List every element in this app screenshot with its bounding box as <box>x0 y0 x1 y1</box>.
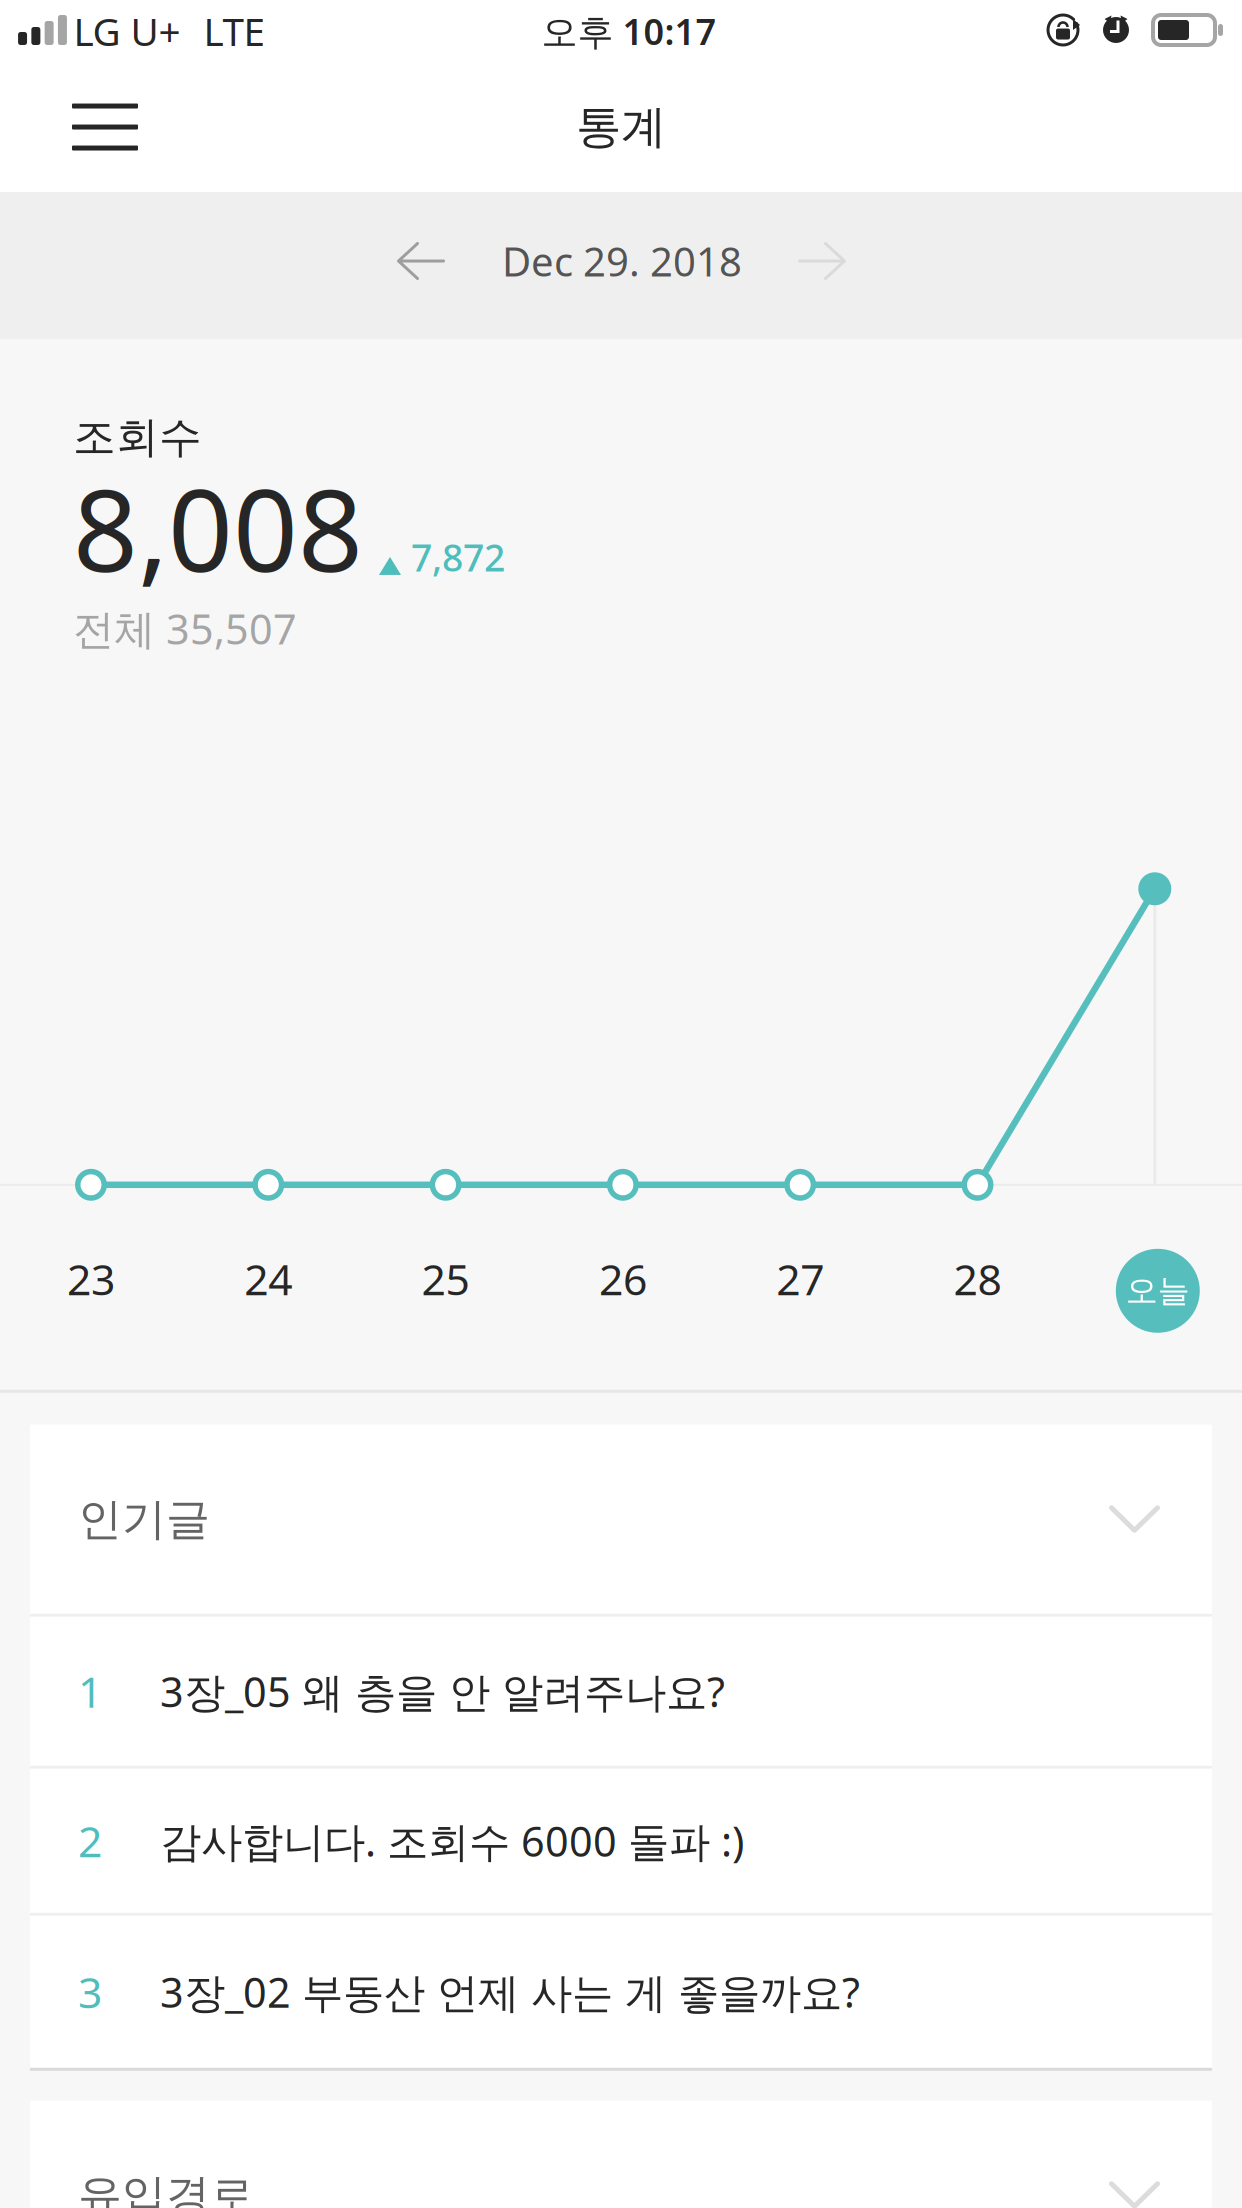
staticText: 26 <box>599 1250 647 1307</box>
button[interactable]: 인기글 <box>30 1425 1212 1614</box>
staticText: 조회수 <box>73 411 202 463</box>
staticText: 24 <box>244 1250 292 1307</box>
staticText: LG U+ <box>73 5 180 57</box>
staticText: 28 <box>953 1250 1001 1307</box>
staticText: 8,008 <box>73 452 363 603</box>
staticText: 3장_02 부동산 언제 사는 게 좋을까요? <box>160 1964 860 2019</box>
staticText: 오후 10:17 <box>541 7 716 55</box>
staticText: 전체 35,507 <box>73 601 297 656</box>
button[interactable]: 1 <box>30 1617 1212 1766</box>
staticText: 3 <box>78 1963 102 2020</box>
button[interactable]: 3 <box>30 1916 1212 2068</box>
staticText: 감사합니다. 조회수 6000 돌파 :) <box>160 1813 744 1868</box>
staticText: 3장_05 왜 층을 안 알려주나요? <box>160 1664 725 1719</box>
staticText: 오늘 <box>1126 1271 1190 1310</box>
staticText: 25 <box>422 1250 470 1307</box>
staticText: 1 <box>78 1663 102 1720</box>
staticText: 27 <box>776 1250 824 1307</box>
staticText: 인기글 <box>78 1492 210 1546</box>
button[interactable]: 유입경로 <box>30 2101 1212 2208</box>
button[interactable]: 2 <box>30 1769 1212 1913</box>
staticText: 유입경로 <box>78 2168 254 2208</box>
staticText: Dec 29. 2018 <box>502 234 742 287</box>
staticText: 통계 <box>576 99 666 155</box>
button[interactable]: 오늘 <box>1116 1249 1200 1333</box>
button[interactable]: Menu <box>50 75 160 178</box>
staticText: LTE <box>203 5 264 57</box>
staticText: 2 <box>78 1812 102 1869</box>
button[interactable]: Previous day <box>361 201 481 321</box>
staticText: 23 <box>67 1250 115 1307</box>
staticText: 7,872 <box>411 532 505 582</box>
